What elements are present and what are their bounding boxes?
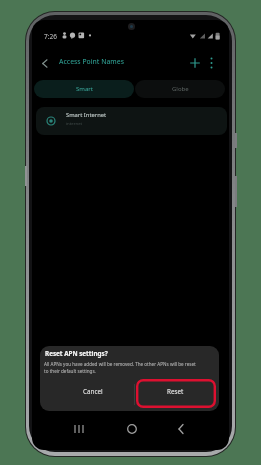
button[interactable]: Globe bbox=[135, 80, 225, 98]
staticText: 7:26 bbox=[44, 32, 57, 41]
button[interactable]: Access Point Names bbox=[32, 55, 181, 73]
staticText: Smart Internet bbox=[66, 111, 107, 119]
button[interactable]: Reset bbox=[135, 382, 215, 400]
staticText: All APNs you have added will be removed.… bbox=[44, 361, 196, 367]
staticText: Globe bbox=[172, 85, 189, 93]
staticText: internet bbox=[66, 120, 83, 126]
button[interactable]: Cancel bbox=[53, 382, 133, 400]
staticText: Reset APN settings? bbox=[45, 349, 108, 358]
button[interactable] bbox=[169, 420, 193, 438]
button[interactable] bbox=[187, 55, 203, 71]
button[interactable]: Smart Internet bbox=[36, 107, 227, 135]
button[interactable]: Smart bbox=[34, 80, 134, 98]
button[interactable] bbox=[205, 55, 218, 71]
button[interactable] bbox=[120, 420, 144, 438]
button[interactable] bbox=[67, 420, 91, 438]
staticText: to their default settings. bbox=[44, 368, 96, 374]
staticText: Cancel bbox=[83, 387, 103, 396]
staticText: Smart bbox=[76, 85, 93, 93]
staticText: Reset bbox=[167, 387, 184, 396]
staticText: Access Point Names bbox=[59, 57, 124, 66]
